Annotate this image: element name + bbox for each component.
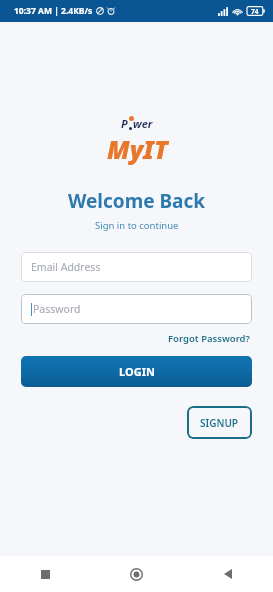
staticText: wer [133, 116, 153, 131]
button[interactable]: Email Address [21, 252, 252, 282]
staticText: Sign in to continue [95, 219, 179, 232]
button[interactable]: LOGIN [21, 356, 252, 387]
staticText: LOGIN [119, 364, 155, 379]
button[interactable]: Home [91, 556, 182, 592]
staticText: P [121, 116, 128, 131]
staticText: Email Address [31, 260, 101, 274]
staticText: Forgot Password? [168, 332, 250, 345]
button[interactable]: SIGNUP [187, 406, 252, 439]
staticText: SIGNUP [200, 416, 239, 430]
button[interactable]: Forgot Password? [166, 331, 252, 346]
staticText: 74 [251, 7, 259, 16]
button[interactable]: Back [182, 556, 273, 592]
staticText: 10:37 AM | 2.4KB/s [14, 5, 93, 17]
button[interactable]: Password [21, 294, 252, 324]
button[interactable]: Recents [0, 556, 91, 592]
staticText: Welcome Back [68, 188, 206, 214]
staticText: MyIT [107, 132, 168, 166]
staticText: Password [33, 302, 81, 316]
